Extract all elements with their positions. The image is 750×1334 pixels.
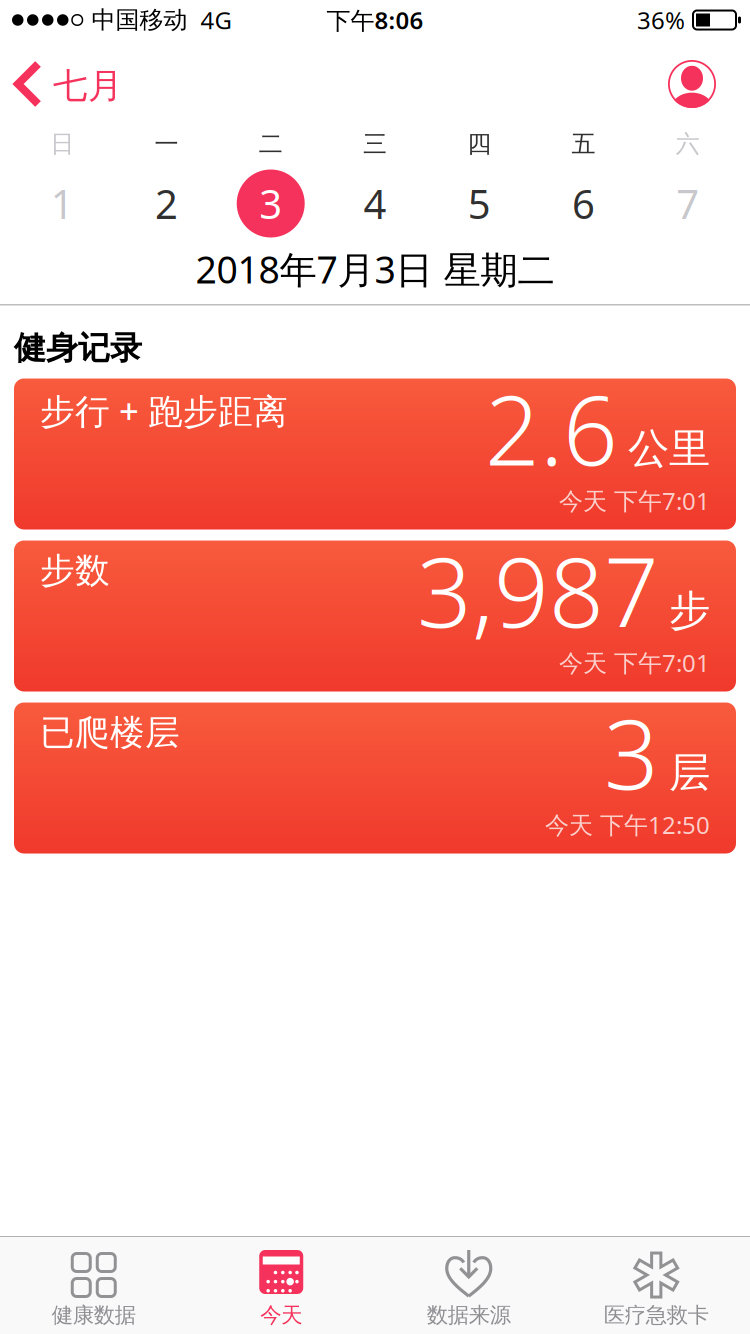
staticText: 7 [676,177,699,230]
staticText: 五 [572,129,596,159]
staticText: 4 [363,177,386,230]
staticText: 3 [259,177,282,230]
staticText: 七月 [53,65,123,107]
staticText: 三 [363,129,387,159]
button[interactable]: 4 [323,177,427,230]
button[interactable]: 七月 [0,63,123,105]
button[interactable]: 6 [531,177,636,230]
staticText: 公里 [628,423,710,474]
staticText: 下午8:06 [326,4,423,36]
button[interactable]: 医疗急救卡 [562,1237,750,1328]
button[interactable] [668,60,750,108]
staticText: 2018年7月3日 星期二 [195,244,554,294]
staticText: 2.6 [485,364,618,492]
staticText: 36% [637,4,685,36]
button[interactable]: 2 [114,177,219,230]
staticText: 今天 下午7:01 [559,647,710,678]
staticText: 医疗急救卡 [604,1302,709,1328]
staticText: 4G [200,4,231,36]
staticText: 今天 下午7:01 [559,485,710,516]
staticText: 数据来源 [427,1302,511,1328]
staticText: 今天 下午12:50 [545,809,710,840]
button[interactable]: 3 [219,169,323,237]
button[interactable]: 7 [636,177,740,230]
staticText: 步行 + 跑步距离 [40,387,288,433]
staticText: 日 [50,129,74,159]
staticText: 1 [51,177,74,230]
staticText: 二 [259,129,283,159]
button[interactable]: 步行 + 跑步距离 [14,378,736,529]
button[interactable]: 已爬楼层 [14,702,736,853]
staticText: 6 [572,177,595,230]
staticText: 步 [669,585,710,636]
button[interactable]: 数据来源 [375,1237,562,1328]
staticText: 健身记录 [14,328,142,368]
staticText: 步数 [40,549,110,592]
button[interactable]: 1 [10,177,114,230]
staticText: 六 [676,129,700,159]
staticText: 5 [468,177,491,230]
staticText: 四 [467,129,491,159]
button[interactable]: 5 [427,177,531,230]
staticText: 健康数据 [52,1302,136,1328]
button[interactable]: 步数 [14,540,736,691]
staticText: 3,987 [417,526,659,654]
staticText: 3 [604,688,659,816]
staticText: 今天 [260,1302,302,1328]
staticText: 中国移动 [91,5,187,35]
button[interactable]: 今天 [187,1237,375,1328]
staticText: 已爬楼层 [40,711,180,754]
staticText: 一 [154,129,178,159]
staticText: 2 [155,177,178,230]
button[interactable]: 健康数据 [0,1237,187,1328]
staticText: 层 [669,747,710,798]
